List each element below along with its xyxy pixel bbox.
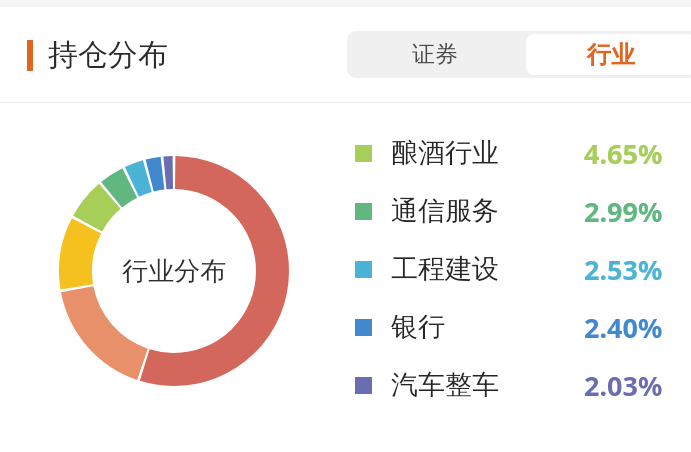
button[interactable]: 证券 xyxy=(347,31,523,78)
staticText: 证券 xyxy=(412,40,458,69)
staticText: 工程建设 xyxy=(391,252,499,286)
staticText: 汽车整车 xyxy=(391,368,499,402)
button[interactable]: 行业 xyxy=(526,34,691,75)
staticText: 2.99% xyxy=(584,193,663,230)
staticText: 4.65% xyxy=(584,135,663,172)
button[interactable]: 汽车整车 xyxy=(355,356,663,414)
staticText: 行业 xyxy=(587,40,635,70)
staticText: 2.40% xyxy=(584,309,663,346)
staticText: 持仓分布 xyxy=(48,36,168,74)
staticText: 通信服务 xyxy=(391,194,499,228)
staticText: 行业分布 xyxy=(122,255,226,288)
button[interactable]: 工程建设 xyxy=(355,240,663,298)
staticText: 酿酒行业 xyxy=(391,136,499,170)
button[interactable]: 银行 xyxy=(355,298,663,356)
staticText: 2.53% xyxy=(584,251,663,288)
staticText: 2.03% xyxy=(584,367,663,404)
button[interactable]: 持仓分布 xyxy=(27,36,168,74)
button[interactable]: 酿酒行业 xyxy=(355,124,663,182)
staticText: 银行 xyxy=(391,310,445,344)
button[interactable]: 通信服务 xyxy=(355,182,663,240)
